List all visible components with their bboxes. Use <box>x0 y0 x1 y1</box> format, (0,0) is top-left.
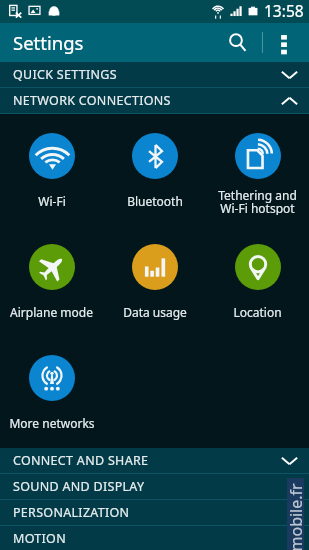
button[interactable]: Wi-Fi <box>0 133 103 215</box>
button[interactable]: QUICK SETTINGS <box>0 62 309 87</box>
staticText: CONNECT AND SHARE <box>13 452 149 469</box>
button[interactable]: More networks <box>0 355 103 437</box>
staticText: Location <box>233 304 282 320</box>
staticText: NETWORK CONNECTIONS <box>13 92 171 109</box>
staticText: QUICK SETTINGS <box>13 66 117 83</box>
button[interactable]: SOUND AND DISPLAY <box>0 474 309 499</box>
staticText: Bluetooth <box>127 193 183 209</box>
staticText: Wi-Fi <box>38 193 66 209</box>
button[interactable]: Bluetooth <box>103 133 206 215</box>
button[interactable]: PERSONALIZATION <box>0 500 309 525</box>
button[interactable]: Search <box>219 24 256 61</box>
staticText: Settings <box>13 30 84 55</box>
button[interactable]: Airplane mode <box>0 244 103 326</box>
staticText: More networks <box>9 415 95 431</box>
button[interactable]: CONNECT AND SHARE <box>0 448 309 473</box>
staticText: Airplane mode <box>10 304 93 320</box>
button[interactable]: Location <box>206 244 309 326</box>
staticText: MOTION <box>13 530 66 547</box>
staticText: Data usage <box>123 304 187 320</box>
button[interactable]: More options <box>263 23 304 62</box>
button[interactable]: Tethering and Wi-Fi hotspot <box>206 133 309 215</box>
staticText: SOUND AND DISPLAY <box>13 478 145 495</box>
button[interactable]: NETWORK CONNECTIONS <box>0 88 309 113</box>
staticText: Tethering and Wi-Fi hotspot <box>218 187 297 215</box>
button[interactable]: Data usage <box>103 244 206 326</box>
button[interactable]: MOTION <box>0 526 309 550</box>
staticText: mobile.fr <box>284 482 306 550</box>
staticText: PERSONALIZATION <box>13 504 130 521</box>
staticText: 13:58 <box>264 0 304 21</box>
